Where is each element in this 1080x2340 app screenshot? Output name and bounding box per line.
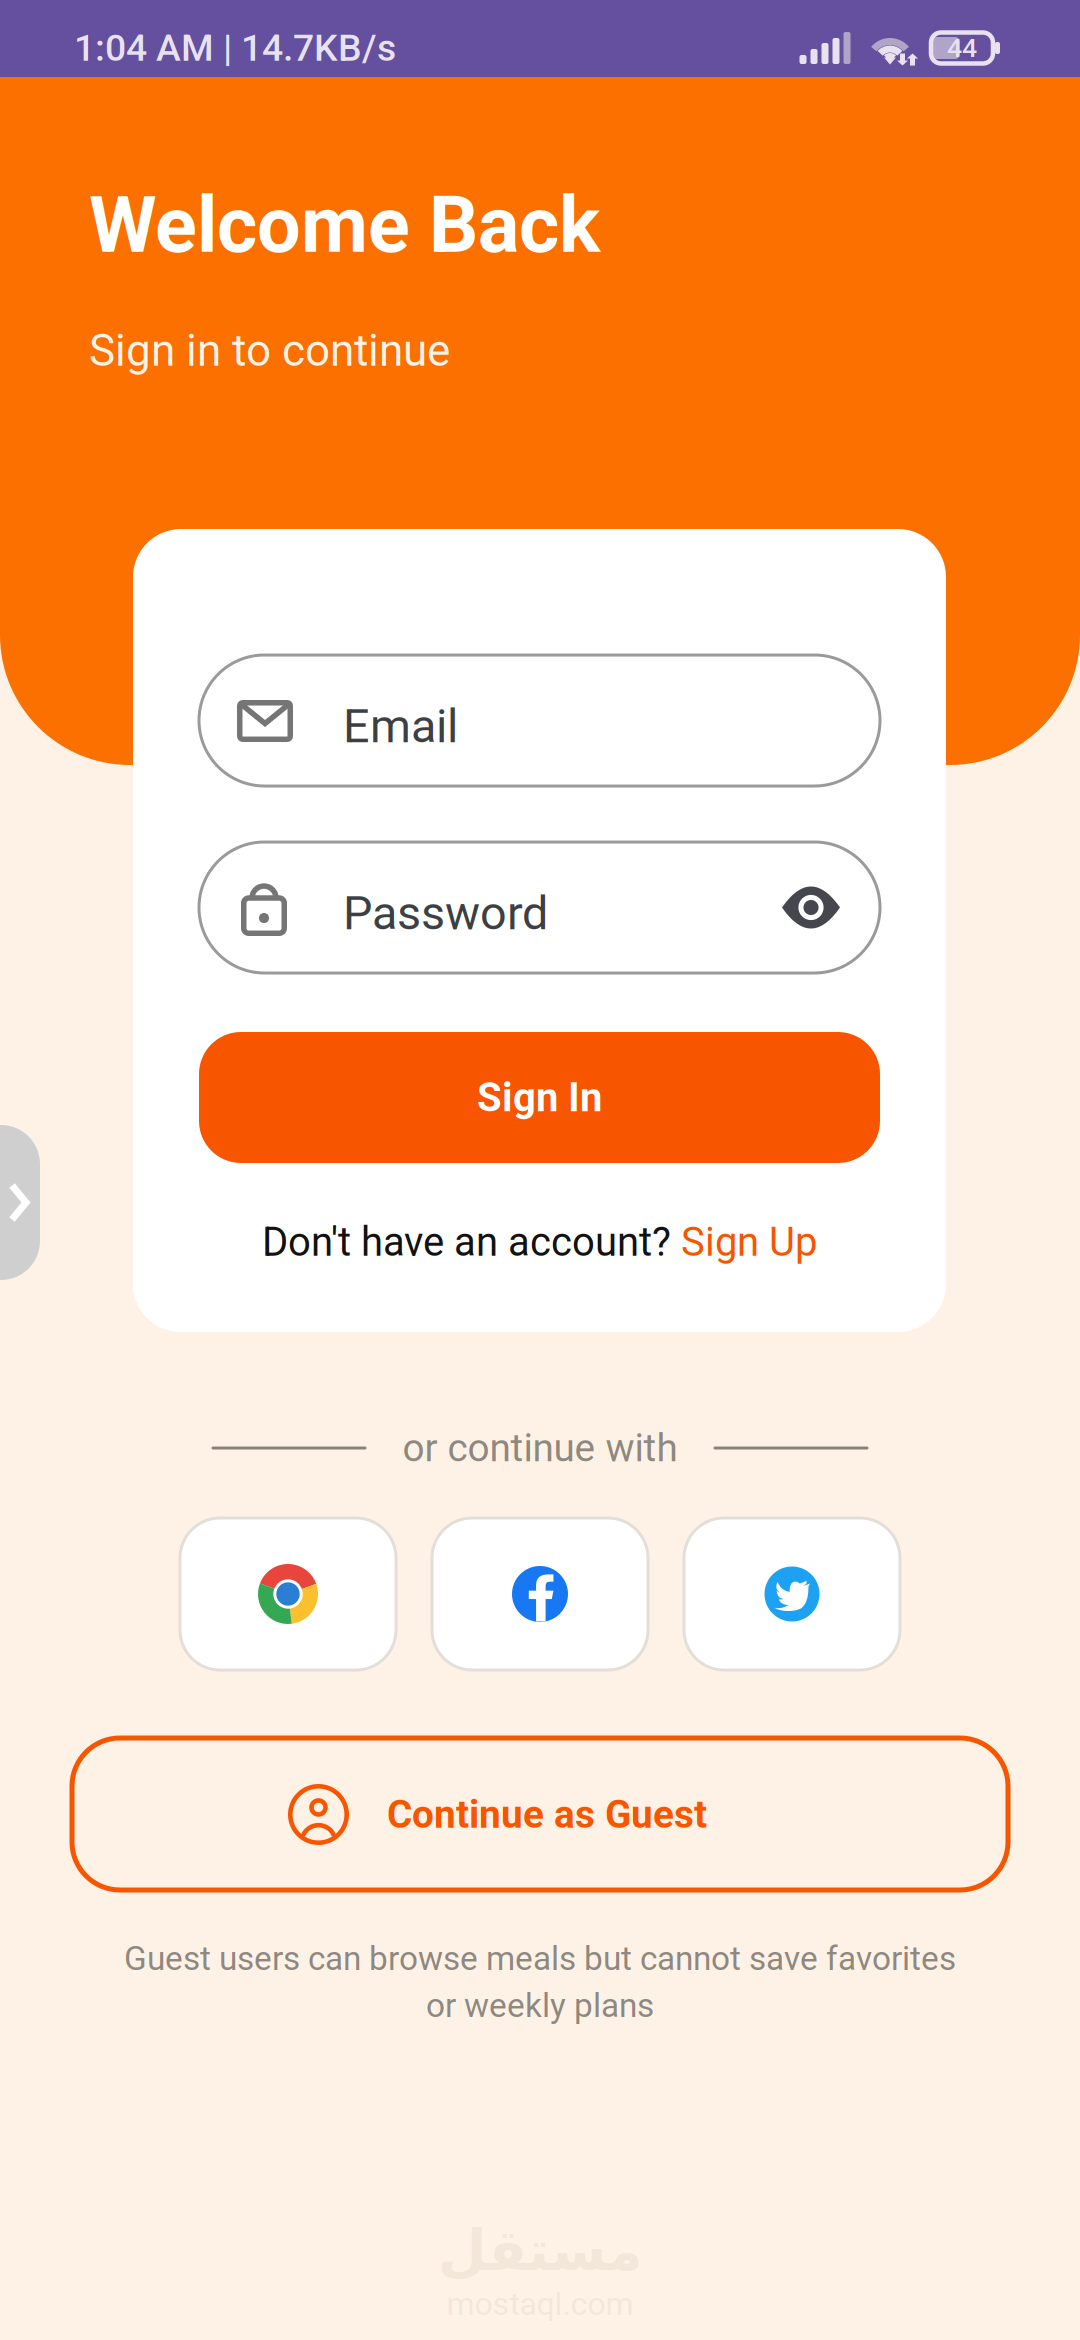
- button[interactable]: Show password: [757, 842, 865, 973]
- staticText: or continue with: [402, 1425, 677, 1471]
- staticText: Sign in to continue: [89, 325, 450, 377]
- staticText: Email: [343, 699, 458, 754]
- staticText: مستقل: [437, 2218, 642, 2283]
- staticText: mostaql.com: [446, 2285, 633, 2323]
- staticText: Password: [343, 886, 548, 941]
- button[interactable]: Don't have an account?: [199, 1197, 880, 1287]
- button[interactable]: Continue with Facebook: [432, 1518, 648, 1670]
- button[interactable]: Continue with Twitter: [684, 1518, 900, 1670]
- staticText: or weekly plans: [426, 1986, 654, 2025]
- button[interactable]: Continue as Guest: [72, 1738, 1008, 1890]
- staticText: Don't have an account?: [262, 1219, 681, 1265]
- staticText: Welcome Back: [89, 180, 600, 271]
- staticText: Sign In: [477, 1074, 602, 1121]
- staticText: 1:04 AM | 14.7KB/s: [74, 26, 396, 70]
- button[interactable]: Continue with Google: [180, 1518, 396, 1670]
- staticText: Guest users can browse meals but cannot …: [124, 1939, 956, 1978]
- staticText: 44: [947, 32, 977, 64]
- button[interactable]: Sign In: [199, 1032, 880, 1163]
- staticText: Sign Up: [681, 1219, 817, 1265]
- staticText: Continue as Guest: [387, 1792, 707, 1837]
